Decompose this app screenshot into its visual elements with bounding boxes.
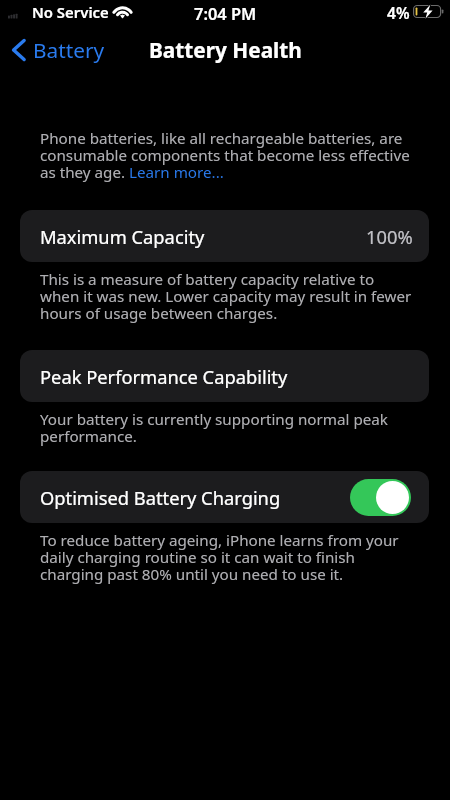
staticText: Phone batteries, like all rechargeable b… <box>40 128 414 183</box>
staticText: Battery <box>33 36 105 64</box>
other: Cellular signal <box>8 11 20 20</box>
staticText: To reduce battery ageing, iPhone learns … <box>40 530 414 585</box>
button[interactable]: Peak Performance Capability <box>20 350 429 402</box>
other: Wi-Fi connected <box>113 5 132 18</box>
other: Battery 4 percent, charging <box>413 5 443 18</box>
staticText: This is a measure of battery capacity re… <box>40 269 414 324</box>
staticText: 7:04 PM <box>194 2 257 24</box>
staticText: No Service <box>32 2 109 22</box>
staticText: Optimised Battery Charging <box>40 485 281 510</box>
staticText: Your battery is currently supporting nor… <box>40 409 414 447</box>
button[interactable]: Optimised Battery Charging, on <box>350 479 411 516</box>
staticText: 100% <box>366 224 413 249</box>
button[interactable]: Optimised Battery Charging <box>20 471 429 523</box>
staticText: Battery Health <box>149 36 302 64</box>
staticText: 4% <box>387 2 410 23</box>
staticText: Peak Performance Capability <box>40 364 288 389</box>
staticText: Maximum Capacity <box>40 224 205 249</box>
button[interactable]: Maximum Capacity <box>20 210 429 262</box>
button[interactable]: Back to Battery <box>11 34 105 66</box>
